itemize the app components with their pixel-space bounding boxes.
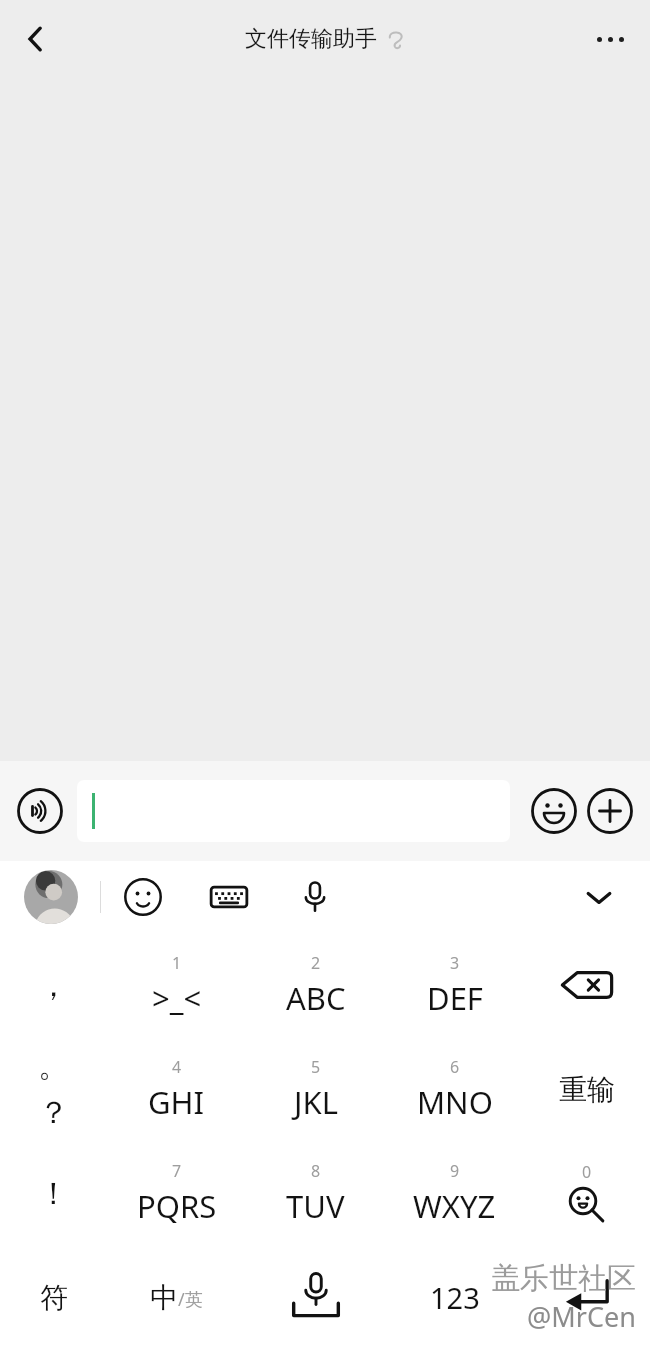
staticText: GHI [148, 1081, 205, 1123]
button[interactable]: 4 [107, 1037, 246, 1141]
staticText: JKL [294, 1081, 338, 1123]
staticText: 9 [450, 1160, 460, 1182]
button[interactable]: Enter [524, 1245, 650, 1349]
staticText: MNO [417, 1081, 493, 1123]
staticText: PQRS [137, 1185, 217, 1227]
staticText: 盖乐世社区 [491, 1260, 636, 1297]
staticText: 2 [311, 952, 321, 974]
staticText: ， [38, 966, 69, 1005]
staticText: TUV [286, 1185, 345, 1227]
staticText: 文件传输助手 [245, 25, 377, 53]
button[interactable]: Voice message [12, 783, 68, 839]
staticText: 5 [311, 1056, 321, 1078]
button[interactable] [77, 780, 510, 842]
button[interactable]: Voice [289, 871, 341, 923]
button[interactable]: 5 [246, 1037, 385, 1141]
button[interactable]: 重输 [524, 1037, 650, 1141]
button[interactable]: 1 [107, 933, 246, 1037]
button[interactable]: 。 [0, 1037, 107, 1141]
staticText: 7 [172, 1160, 182, 1182]
staticText: /英 [178, 1287, 203, 1312]
staticText: 4 [172, 1056, 182, 1078]
button[interactable]: Keyboard [203, 871, 255, 923]
button[interactable]: 7 [107, 1141, 246, 1245]
button[interactable]: More functions [582, 783, 638, 839]
button[interactable]: Hide keyboard [572, 870, 626, 924]
button[interactable]: 6 [385, 1037, 524, 1141]
staticText: DEF [427, 977, 483, 1019]
staticText: ！ [38, 1174, 69, 1213]
staticText: WXYZ [413, 1185, 496, 1227]
button[interactable]: Profile [24, 870, 78, 924]
staticText: >_< [152, 977, 202, 1019]
button[interactable]: ！ [0, 1141, 107, 1245]
staticText: ABC [286, 977, 346, 1019]
staticText: 0 [582, 1161, 592, 1183]
staticText: 中 [150, 1280, 178, 1315]
staticText: 重输 [559, 1072, 615, 1107]
staticText: 8 [311, 1160, 321, 1182]
button[interactable]: Backspace [524, 933, 650, 1037]
staticText: 符 [40, 1280, 68, 1315]
button[interactable]: More options [582, 11, 638, 67]
button[interactable]: Emoji search [524, 1141, 650, 1245]
button[interactable]: 符 [0, 1245, 107, 1349]
staticText: 。 [38, 1046, 69, 1085]
button[interactable]: 8 [246, 1141, 385, 1245]
button[interactable]: 2 [246, 933, 385, 1037]
button[interactable]: ， [0, 933, 107, 1037]
button[interactable]: Voice input [246, 1245, 385, 1349]
staticText: 1 [172, 952, 182, 974]
button[interactable]: 123 [385, 1245, 524, 1349]
button[interactable]: 中 [107, 1245, 246, 1349]
staticText: 6 [450, 1056, 460, 1078]
staticText: ？ [38, 1093, 69, 1132]
staticText: 123 [430, 1278, 480, 1317]
staticText: @MrCen [527, 1298, 636, 1335]
button[interactable]: Stickers [117, 871, 169, 923]
button[interactable]: 9 [385, 1141, 524, 1245]
button[interactable]: Back [8, 11, 64, 67]
button[interactable]: Emoji [526, 783, 582, 839]
staticText: 3 [450, 952, 460, 974]
button[interactable]: 3 [385, 933, 524, 1037]
